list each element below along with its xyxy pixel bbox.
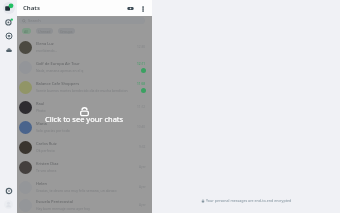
staticText: Escuela Pentecostal	[36, 199, 73, 204]
staticText: Hay buen mensaje como ayer hoy	[36, 206, 90, 211]
staticText: Ayer	[139, 185, 146, 189]
staticText: Carlos Ruiz	[36, 141, 57, 146]
staticText: 12:30	[137, 45, 146, 49]
staticText: Search	[28, 18, 41, 23]
staticText: Chats	[23, 4, 40, 12]
staticText: Photo	[36, 108, 46, 113]
button[interactable]: Balance Cafe Shoppers	[17, 77, 152, 97]
button[interactable]: Channels	[2, 29, 16, 43]
staticText: 12:11	[137, 62, 146, 66]
button[interactable]: All	[22, 28, 31, 34]
button[interactable]: Chats	[2, 1, 16, 15]
staticText: Balance Cafe Shoppers	[36, 81, 80, 86]
staticText: Ayer	[139, 165, 146, 169]
button[interactable]: Profile	[2, 198, 15, 211]
button[interactable]: Raul	[17, 97, 152, 117]
button[interactable]: Golf de Europa Air Tour	[17, 57, 152, 77]
button[interactable]: Unread	[36, 28, 53, 34]
staticText: 9:32	[139, 145, 146, 149]
button[interactable]: Communities	[2, 43, 16, 57]
button[interactable]: Maria	[17, 117, 152, 137]
button[interactable]: New chat	[125, 3, 136, 14]
button[interactable]: Carlos Ruiz	[17, 137, 152, 157]
staticText: Unread	[38, 29, 51, 34]
staticText: Sonrie buenos martes bendecido dia de mu…	[36, 88, 128, 93]
staticText: 11:58	[137, 82, 146, 86]
staticText: Gracias, te deseo una muy feliz semana, …	[36, 188, 117, 193]
button[interactable]: Menu	[137, 3, 148, 14]
staticText: Ok perfecto	[36, 148, 55, 153]
button[interactable]: Elena Luz	[17, 37, 152, 57]
staticText: Nada, manana apenas en el q	[36, 68, 84, 73]
button[interactable]: Kristen Diaz	[17, 157, 152, 177]
button[interactable]: Escuela Pentecostal	[17, 197, 152, 213]
staticText: Maria	[36, 121, 47, 126]
staticText: Click to see your chats	[45, 114, 124, 124]
staticText: Solo gracias por todo	[36, 128, 70, 133]
staticText: Te veo ahora	[36, 168, 57, 173]
staticText: Golf de Europa Air Tour	[36, 61, 80, 66]
staticText: 11:12	[137, 105, 146, 109]
staticText: Helen	[36, 181, 47, 186]
staticText: All	[24, 29, 29, 34]
staticText: Groups	[60, 29, 73, 34]
staticText: Elena Luz	[36, 41, 54, 46]
staticText: escribiendo...	[36, 48, 58, 53]
staticText: Ayer	[139, 203, 146, 207]
button[interactable]: Helen	[17, 177, 152, 197]
staticText: 10:40	[137, 125, 146, 129]
staticText: Kristen Diaz	[36, 161, 59, 166]
button[interactable]: Settings	[2, 184, 16, 198]
button[interactable]: Groups	[58, 28, 75, 34]
staticText: Your personal messages are end-to-end en…	[206, 198, 292, 203]
button[interactable]: Status	[2, 15, 16, 29]
staticText: Raul	[36, 101, 45, 106]
